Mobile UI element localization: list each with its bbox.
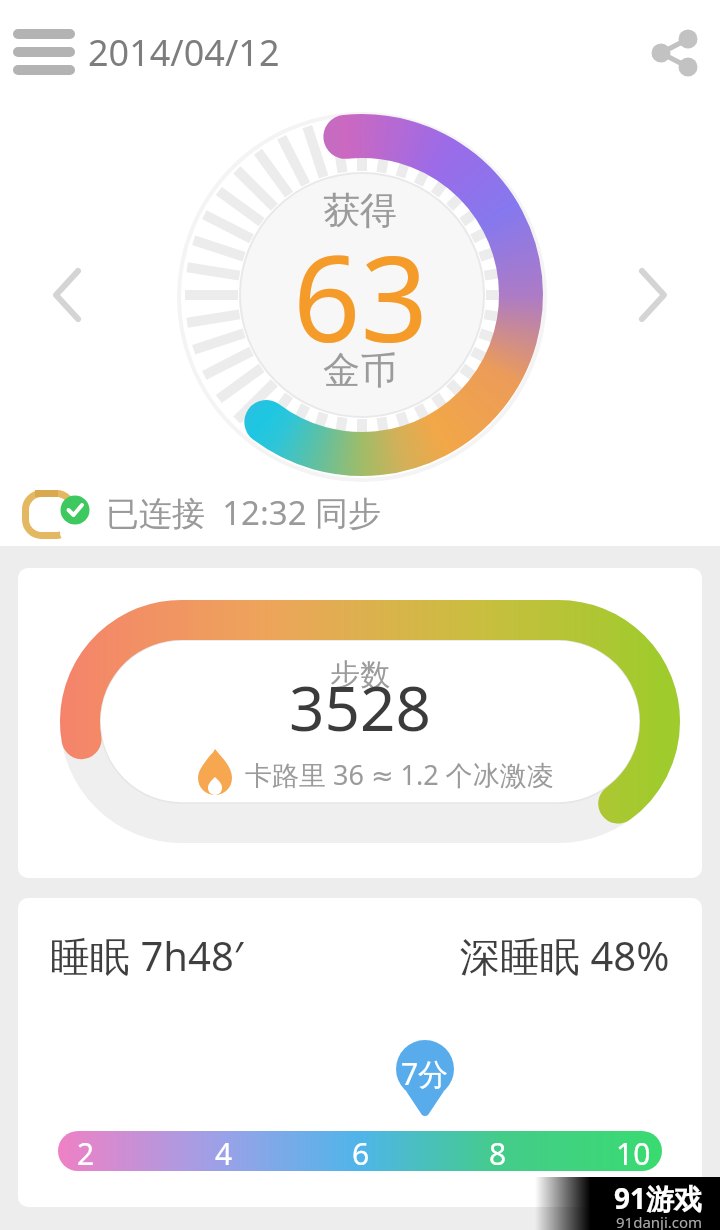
staticText: 91danji.com [616,1212,703,1230]
staticText: 获得 [323,187,397,234]
staticText: 6 [352,1133,370,1169]
button[interactable]: 已连接 12:32 同步 [22,482,382,542]
staticText: 91游戏 [614,1179,703,1217]
staticText: 2014/04/12 [88,28,280,77]
staticText: 4 [215,1133,233,1169]
button[interactable] [16,28,72,76]
button[interactable] [48,266,88,324]
staticText: 睡眠 7h48′ [50,928,244,983]
staticText: 卡路里 36 ≈ 1.2 个冰激凌 [245,756,554,793]
staticText: 8 [489,1133,507,1169]
staticText: 63 [293,216,428,377]
staticText: 2 [77,1133,95,1169]
button[interactable] [648,26,704,82]
staticText: 7分 [401,1053,449,1094]
staticText: 步数 [330,656,390,694]
button[interactable]: 睡眠 7h48′ [18,898,702,1207]
button[interactable]: 步数 [18,568,702,878]
staticText: 已连接 12:32 同步 [106,490,382,535]
staticText: 3528 [289,665,431,749]
staticText: 金币 [323,347,397,394]
staticText: 深睡眠 48% [460,928,670,983]
button[interactable] [632,266,672,324]
button[interactable] [393,1038,457,1118]
staticText: 10 [616,1133,651,1169]
